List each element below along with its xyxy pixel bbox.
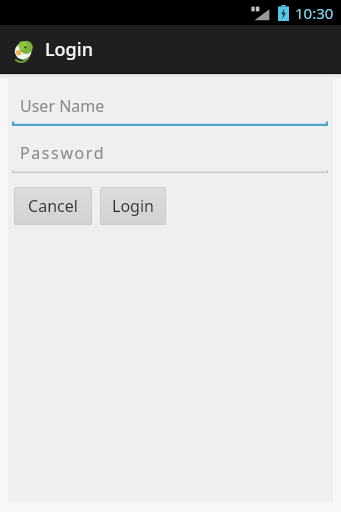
staticText: Cancel xyxy=(28,195,78,217)
staticText: Login xyxy=(45,37,93,62)
staticText: Login xyxy=(112,195,154,217)
button[interactable]: Password xyxy=(12,138,328,173)
button[interactable]: Cancel xyxy=(14,187,92,225)
button[interactable]: Login xyxy=(100,187,166,225)
staticText: Password xyxy=(20,142,106,164)
staticText: 10:30 xyxy=(295,3,334,23)
staticText: User Name xyxy=(20,95,105,117)
button[interactable]: User Name xyxy=(12,91,328,126)
